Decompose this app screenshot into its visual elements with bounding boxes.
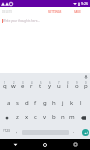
staticText: q xyxy=(3,82,7,90)
staticText: p xyxy=(84,82,88,90)
staticText: s xyxy=(16,99,19,107)
staticText: 2 xyxy=(13,81,15,85)
button[interactable]: s xyxy=(13,95,22,110)
button[interactable]: Enter xyxy=(82,129,89,136)
button[interactable]: 8 xyxy=(63,80,72,95)
staticText: 5 xyxy=(40,81,42,85)
button[interactable]: j xyxy=(58,95,67,110)
staticText: m xyxy=(69,113,75,121)
button[interactable]: Backspace xyxy=(76,110,90,125)
button[interactable]: d xyxy=(22,95,31,110)
button[interactable]: f xyxy=(31,95,40,110)
staticText: b xyxy=(52,113,56,121)
staticText: 9:26 xyxy=(81,1,89,6)
button[interactable]: 6 xyxy=(45,80,54,95)
button[interactable]: h xyxy=(49,95,58,110)
staticText: , xyxy=(16,128,18,134)
staticText: 9 xyxy=(76,81,78,85)
button[interactable]: Recents xyxy=(60,139,90,150)
staticText: h xyxy=(52,99,56,107)
button[interactable]: Shift xyxy=(0,110,13,125)
staticText: e xyxy=(21,82,25,90)
staticText: 6 xyxy=(49,81,51,85)
staticText: . xyxy=(73,128,75,134)
staticText: a xyxy=(7,99,11,107)
staticText: Write your thoughts here... xyxy=(3,19,40,23)
button[interactable]: g xyxy=(40,95,49,110)
button[interactable]: c xyxy=(31,110,40,125)
staticText: c xyxy=(34,113,37,121)
staticText: o xyxy=(75,82,79,90)
staticText: g xyxy=(43,99,47,107)
staticText: j xyxy=(62,99,64,107)
button[interactable]: DELETE xyxy=(0,8,15,16)
staticText: v xyxy=(43,113,47,121)
button[interactable]: 7 xyxy=(54,80,63,95)
staticText: SETTINGS xyxy=(48,10,62,14)
staticText: 8 xyxy=(67,81,69,85)
button[interactable]: k xyxy=(67,95,76,110)
staticText: l xyxy=(80,99,82,107)
button[interactable]: SAVE xyxy=(72,8,90,16)
button[interactable]: z xyxy=(13,110,22,125)
button[interactable]: , xyxy=(12,125,22,139)
staticText: y xyxy=(48,82,52,90)
staticText: d xyxy=(25,99,29,107)
button[interactable]: . xyxy=(69,125,79,139)
staticText: 1 xyxy=(4,81,6,85)
button[interactable]: b xyxy=(49,110,58,125)
staticText: 7 xyxy=(58,81,60,85)
staticText: 4 xyxy=(31,81,33,85)
button[interactable]: Voice input xyxy=(83,74,88,79)
button[interactable]: 5 xyxy=(36,80,45,95)
staticText: z xyxy=(16,113,19,121)
button[interactable]: 1 xyxy=(0,80,9,95)
staticText: r xyxy=(30,82,33,90)
staticText: DELETE xyxy=(2,10,13,14)
button[interactable]: Home xyxy=(30,139,60,150)
button[interactable]: v xyxy=(40,110,49,125)
button[interactable]: ?123 xyxy=(0,125,12,139)
button[interactable]: 4 xyxy=(27,80,36,95)
button[interactable]: x xyxy=(22,110,31,125)
button[interactable]: a xyxy=(4,95,13,110)
staticText: x xyxy=(25,113,29,121)
staticText: n xyxy=(61,113,65,121)
staticText: 0 xyxy=(85,81,87,85)
staticText: t xyxy=(39,82,42,90)
button[interactable]: l xyxy=(76,95,85,110)
staticText: f xyxy=(34,99,37,107)
button[interactable]: 2 xyxy=(9,80,18,95)
button[interactable]: n xyxy=(58,110,67,125)
staticText: k xyxy=(70,99,74,107)
staticText: SAVE xyxy=(74,10,81,14)
staticText: i xyxy=(67,82,69,90)
staticText: 3 xyxy=(22,81,24,85)
staticText: w xyxy=(11,82,16,90)
button[interactable]: Back xyxy=(0,139,30,150)
button[interactable]: 0 xyxy=(81,80,90,95)
button[interactable]: Write your thoughts here... xyxy=(0,16,90,73)
button[interactable]: 3 xyxy=(18,80,27,95)
button[interactable]: SETTINGS xyxy=(46,8,64,16)
button[interactable]: 9 xyxy=(72,80,81,95)
staticText: u xyxy=(57,82,61,90)
staticText: ?123 xyxy=(3,129,10,133)
button[interactable]: m xyxy=(67,110,76,125)
